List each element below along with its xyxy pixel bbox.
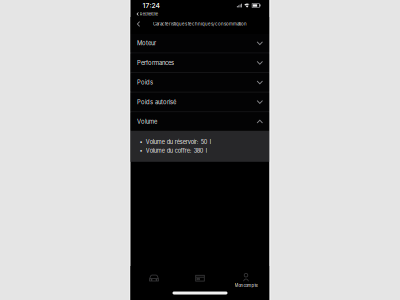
staticText: Poids bbox=[137, 79, 153, 86]
staticText: Volume du coffre: 380 l bbox=[146, 147, 207, 154]
staticText: Recherche bbox=[140, 12, 158, 16]
button[interactable]: Volume bbox=[130, 112, 269, 131]
button[interactable]: Poids autorisé bbox=[130, 93, 269, 111]
button[interactable]: Véhicules bbox=[131, 266, 177, 288]
button[interactable]: Poids bbox=[130, 73, 269, 92]
button[interactable]: Back bbox=[132, 18, 144, 30]
staticText: • bbox=[139, 138, 142, 145]
button[interactable]: Offres bbox=[177, 266, 223, 288]
staticText: Poids autorisé bbox=[137, 98, 176, 106]
staticText: Mon compte bbox=[234, 283, 257, 288]
staticText: Volume bbox=[137, 118, 157, 125]
staticText: Volume du réservoir: 50 l bbox=[146, 138, 211, 145]
button[interactable]: Performances bbox=[130, 54, 269, 72]
button[interactable]: Moteur bbox=[130, 34, 269, 52]
staticText: 17:24 bbox=[142, 1, 159, 10]
button[interactable]: Mon compte bbox=[223, 266, 269, 288]
staticText: • bbox=[139, 147, 142, 154]
staticText: Moteur bbox=[137, 40, 156, 47]
staticText: Caractéristiques techniques/consommation bbox=[153, 21, 247, 27]
staticText: Performances bbox=[137, 59, 174, 66]
